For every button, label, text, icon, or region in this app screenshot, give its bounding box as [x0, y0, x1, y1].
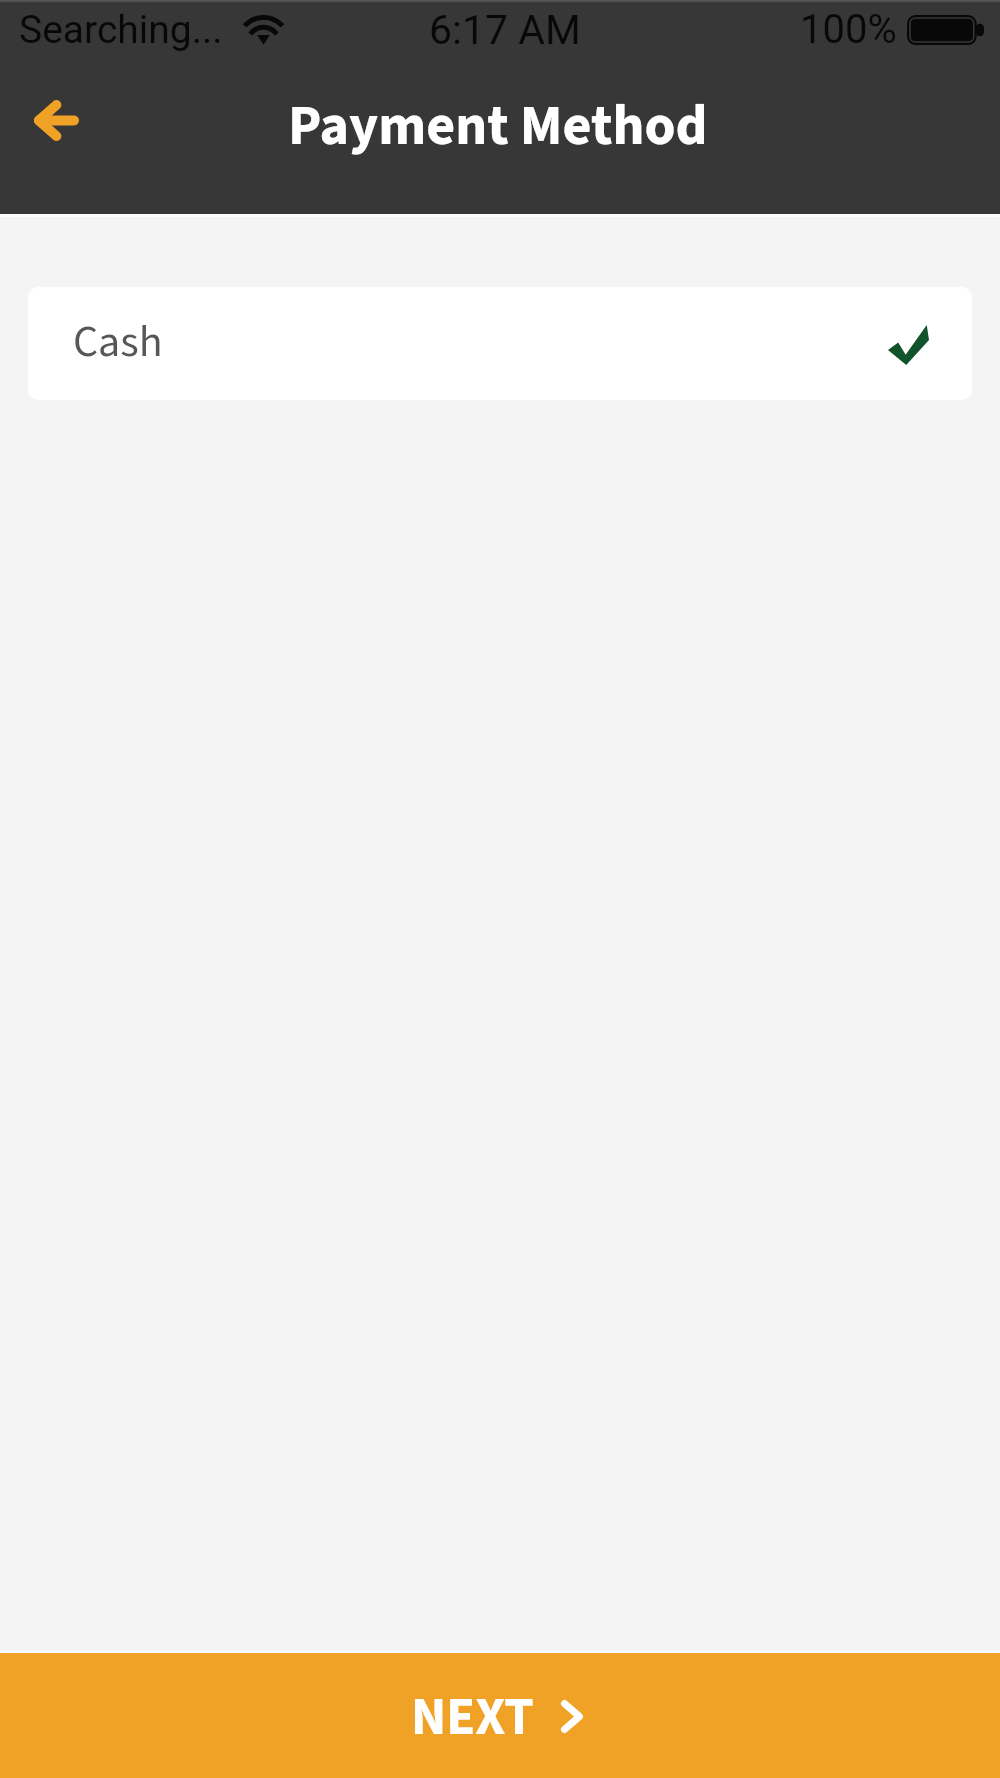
staticText: 6:17 AM: [429, 6, 581, 54]
staticText: Cash: [73, 311, 163, 374]
button[interactable]: Cash: [28, 287, 972, 400]
button[interactable]: NEXT: [0, 1653, 1000, 1778]
button[interactable]: Back: [14, 78, 99, 162]
staticText: 100%: [800, 6, 897, 53]
staticText: Searching...: [19, 7, 223, 53]
staticText: NEXT: [411, 1680, 534, 1755]
staticText: Payment Method: [288, 87, 708, 167]
